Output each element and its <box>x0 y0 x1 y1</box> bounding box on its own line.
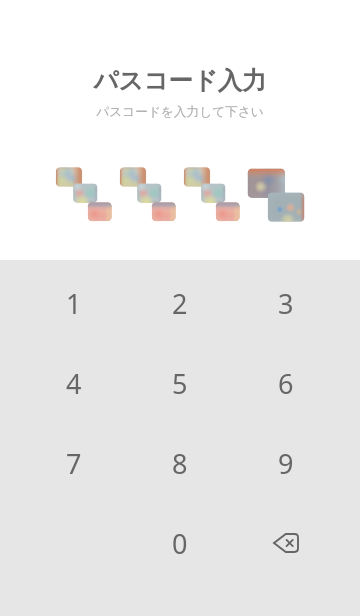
button[interactable]: 3 <box>233 263 339 343</box>
staticText: 4 <box>66 365 82 402</box>
staticText: 0 <box>172 525 188 562</box>
button[interactable]: 6 <box>233 343 339 423</box>
staticText: 2 <box>172 285 188 322</box>
staticText: パスコードを入力して下さい <box>96 104 264 120</box>
staticText: 7 <box>66 445 82 482</box>
staticText: 9 <box>278 445 294 482</box>
button[interactable]: Delete <box>264 521 308 565</box>
staticText: 5 <box>172 365 188 402</box>
button[interactable]: 8 <box>127 423 233 503</box>
staticText: 8 <box>172 445 188 482</box>
button[interactable]: 9 <box>233 423 339 503</box>
button[interactable]: Delete <box>233 503 339 583</box>
staticText: 6 <box>278 365 294 402</box>
button[interactable]: 4 <box>21 343 127 423</box>
button[interactable]: 1 <box>21 263 127 343</box>
button[interactable]: 2 <box>127 263 233 343</box>
staticText: 1 <box>66 285 82 322</box>
button[interactable]: 7 <box>21 423 127 503</box>
button[interactable]: 0 <box>127 503 233 583</box>
staticText: パスコード入力 <box>93 66 267 97</box>
staticText: 3 <box>278 285 294 322</box>
button[interactable]: 5 <box>127 343 233 423</box>
